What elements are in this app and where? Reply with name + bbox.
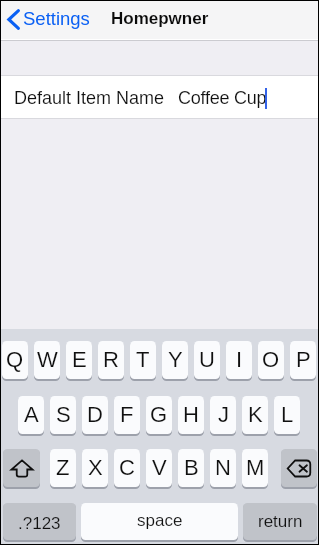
staticText: return: [258, 512, 303, 531]
button[interactable]: V: [146, 449, 172, 487]
staticText: G: [150, 402, 168, 427]
staticText: K: [248, 402, 263, 427]
staticText: P: [296, 347, 311, 372]
button[interactable]: X: [82, 449, 108, 487]
button[interactable]: C: [114, 449, 140, 487]
button[interactable]: G: [146, 396, 172, 434]
staticText: Default Item Name: [14, 88, 165, 108]
button[interactable]: E: [66, 341, 92, 379]
staticText: T: [136, 347, 150, 372]
staticText: O: [262, 347, 280, 372]
button[interactable]: Y: [162, 341, 188, 379]
staticText: B: [184, 455, 199, 480]
button[interactable]: Z: [50, 449, 76, 487]
button[interactable]: P: [290, 341, 316, 379]
button[interactable]: .?123: [3, 503, 76, 540]
button[interactable]: S: [50, 396, 76, 434]
staticText: A: [24, 402, 39, 427]
button[interactable]: K: [242, 396, 268, 434]
staticText: .?123: [18, 514, 61, 533]
staticText: Homepwner: [111, 9, 209, 28]
staticText: F: [120, 402, 134, 427]
button[interactable]: N: [210, 449, 236, 487]
button[interactable]: B: [178, 449, 204, 487]
button[interactable]: I: [226, 341, 252, 379]
staticText: R: [103, 347, 119, 372]
button[interactable]: L: [274, 396, 300, 434]
staticText: space: [137, 511, 183, 530]
button[interactable]: return: [243, 503, 317, 540]
staticText: Settings: [23, 8, 90, 29]
button[interactable]: U: [194, 341, 220, 379]
button[interactable]: O: [258, 341, 284, 379]
staticText: Z: [56, 455, 70, 480]
staticText: Coffee Cup: [178, 88, 267, 108]
button[interactable]: A: [18, 396, 44, 434]
staticText: Y: [168, 347, 183, 372]
staticText: Q: [6, 347, 24, 372]
button[interactable]: Backspace: [281, 449, 317, 487]
staticText: S: [56, 402, 71, 427]
button[interactable]: H: [178, 396, 204, 434]
staticText: N: [215, 455, 231, 480]
button[interactable]: Q: [2, 341, 28, 379]
button[interactable]: [1, 75, 318, 119]
staticText: E: [72, 347, 87, 372]
button[interactable]: T: [130, 341, 156, 379]
button[interactable]: space: [81, 503, 238, 540]
button[interactable]: D: [82, 396, 108, 434]
staticText: V: [152, 455, 167, 480]
staticText: I: [236, 347, 243, 372]
button[interactable]: F: [114, 396, 140, 434]
button[interactable]: R: [98, 341, 124, 379]
staticText: W: [37, 347, 58, 372]
staticText: L: [281, 402, 294, 427]
button[interactable]: Settings: [4, 4, 96, 36]
staticText: X: [88, 455, 103, 480]
button[interactable]: W: [34, 341, 60, 379]
staticText: D: [87, 402, 103, 427]
staticText: C: [119, 455, 135, 480]
staticText: H: [183, 402, 199, 427]
staticText: U: [199, 347, 215, 372]
button[interactable]: Shift: [3, 449, 40, 487]
button[interactable]: M: [242, 449, 268, 487]
button[interactable]: J: [210, 396, 236, 434]
staticText: J: [218, 402, 229, 427]
staticText: M: [246, 455, 265, 480]
